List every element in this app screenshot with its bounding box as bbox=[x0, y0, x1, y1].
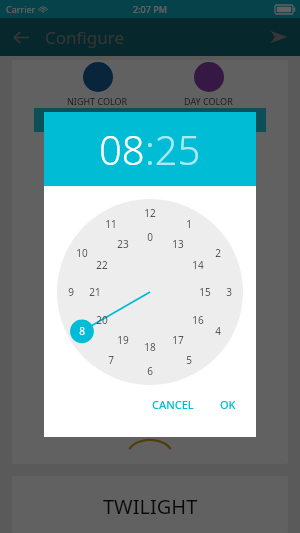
staticText: 14 bbox=[192, 258, 204, 272]
staticText: 23 bbox=[117, 237, 129, 251]
staticText: 3 bbox=[226, 285, 232, 299]
staticText: 5 bbox=[186, 353, 192, 367]
button[interactable]: 08 bbox=[99, 122, 145, 176]
staticText: 2:07 PM bbox=[133, 3, 167, 15]
staticText: NIGHT COLOR bbox=[67, 95, 128, 107]
button[interactable] bbox=[34, 108, 266, 132]
staticText: 20 bbox=[96, 313, 108, 327]
staticText: Carrier bbox=[6, 3, 36, 15]
staticText: 11 bbox=[105, 217, 117, 231]
staticText: OK bbox=[220, 397, 236, 412]
button[interactable] bbox=[83, 62, 113, 92]
staticText: 17 bbox=[172, 333, 184, 347]
staticText: 9 bbox=[68, 285, 74, 299]
staticText: 8 bbox=[79, 324, 85, 338]
staticText: 22 bbox=[96, 258, 108, 272]
button[interactable]: Send bbox=[262, 20, 296, 54]
staticText: 13 bbox=[172, 237, 184, 251]
button[interactable]: :25 bbox=[145, 122, 201, 176]
staticText: DAY COLOR bbox=[184, 95, 233, 107]
staticText: 15 bbox=[199, 285, 211, 299]
button[interactable]: CANCEL bbox=[146, 393, 200, 416]
staticText: TWILIGHT bbox=[103, 493, 198, 520]
staticText: 1 bbox=[186, 217, 192, 231]
staticText: 0 bbox=[147, 230, 153, 244]
staticText: 16 bbox=[192, 313, 204, 327]
staticText: 6 bbox=[147, 364, 153, 378]
staticText: 21 bbox=[89, 285, 101, 299]
staticText: 10 bbox=[76, 246, 88, 260]
button[interactable]: Back bbox=[4, 20, 38, 54]
staticText: 19 bbox=[117, 333, 129, 347]
button[interactable] bbox=[194, 62, 224, 92]
staticText: CANCEL bbox=[152, 397, 194, 412]
staticText: 12 bbox=[144, 206, 156, 220]
staticText: Configure bbox=[45, 26, 124, 49]
staticText: 2 bbox=[215, 246, 221, 260]
staticText: 4 bbox=[215, 324, 221, 338]
button[interactable]: OK bbox=[214, 393, 242, 416]
staticText: 18 bbox=[144, 340, 156, 354]
staticText: 7 bbox=[108, 353, 114, 367]
